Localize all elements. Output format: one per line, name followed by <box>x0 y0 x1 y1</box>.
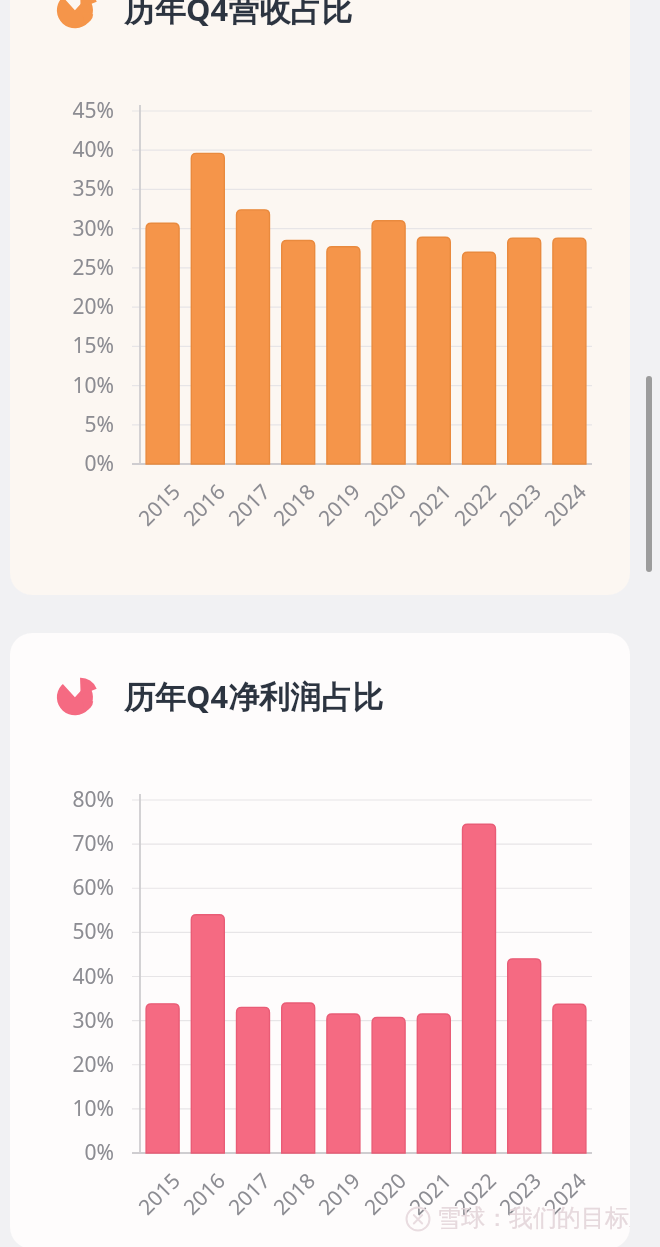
staticText: 2019 <box>312 477 367 532</box>
staticText: 2021 <box>403 1166 458 1221</box>
staticText: 2023 <box>493 1166 548 1221</box>
staticText: 30% <box>26 214 114 243</box>
staticText: 2020 <box>358 1166 413 1221</box>
staticText: 2020 <box>358 477 413 532</box>
staticText: 15% <box>26 331 114 360</box>
staticText: 2022 <box>448 1166 503 1221</box>
staticText: 2017 <box>222 477 277 532</box>
staticText: 80% <box>26 785 114 814</box>
staticText: 2021 <box>403 477 458 532</box>
staticText: 2024 <box>538 477 593 532</box>
staticText: 2023 <box>493 477 548 532</box>
staticText: 20% <box>26 1050 114 1079</box>
staticText: 历年Q4营收占比 <box>124 0 353 30</box>
staticText: 0% <box>26 449 114 478</box>
staticText: 30% <box>26 1006 114 1035</box>
staticText: 70% <box>26 829 114 858</box>
staticText: 2024 <box>538 1166 593 1221</box>
staticText: 2016 <box>177 477 232 532</box>
staticText: 45% <box>26 96 114 125</box>
button[interactable]: Pie chart <box>56 667 516 725</box>
other: Pie chart <box>56 0 100 31</box>
staticText: 10% <box>26 1094 114 1123</box>
staticText: 2018 <box>267 477 322 532</box>
button[interactable]: Pie chart <box>10 0 630 595</box>
staticText: 0% <box>26 1138 114 1167</box>
button[interactable]: Pie chart <box>10 633 630 1247</box>
staticText: 2018 <box>267 1166 322 1221</box>
staticText: 60% <box>26 873 114 902</box>
staticText: 历年Q4净利润占比 <box>124 675 384 717</box>
staticText: 2022 <box>448 477 503 532</box>
staticText: 2017 <box>222 1166 277 1221</box>
staticText: 2019 <box>312 1166 367 1221</box>
staticText: 25% <box>26 253 114 282</box>
other: Pie chart <box>56 674 100 718</box>
staticText: 40% <box>26 962 114 991</box>
staticText: 2015 <box>132 477 187 532</box>
staticText: 10% <box>26 371 114 400</box>
staticText: 雪球：我们的目标永远 <box>437 1203 630 1233</box>
staticText: 40% <box>26 135 114 164</box>
staticText: 50% <box>26 917 114 946</box>
staticText: 2015 <box>132 1166 187 1221</box>
staticText: 20% <box>26 292 114 321</box>
button[interactable]: Pie chart <box>56 0 516 38</box>
staticText: 2016 <box>177 1166 232 1221</box>
staticText: 35% <box>26 174 114 203</box>
staticText: 5% <box>26 410 114 439</box>
